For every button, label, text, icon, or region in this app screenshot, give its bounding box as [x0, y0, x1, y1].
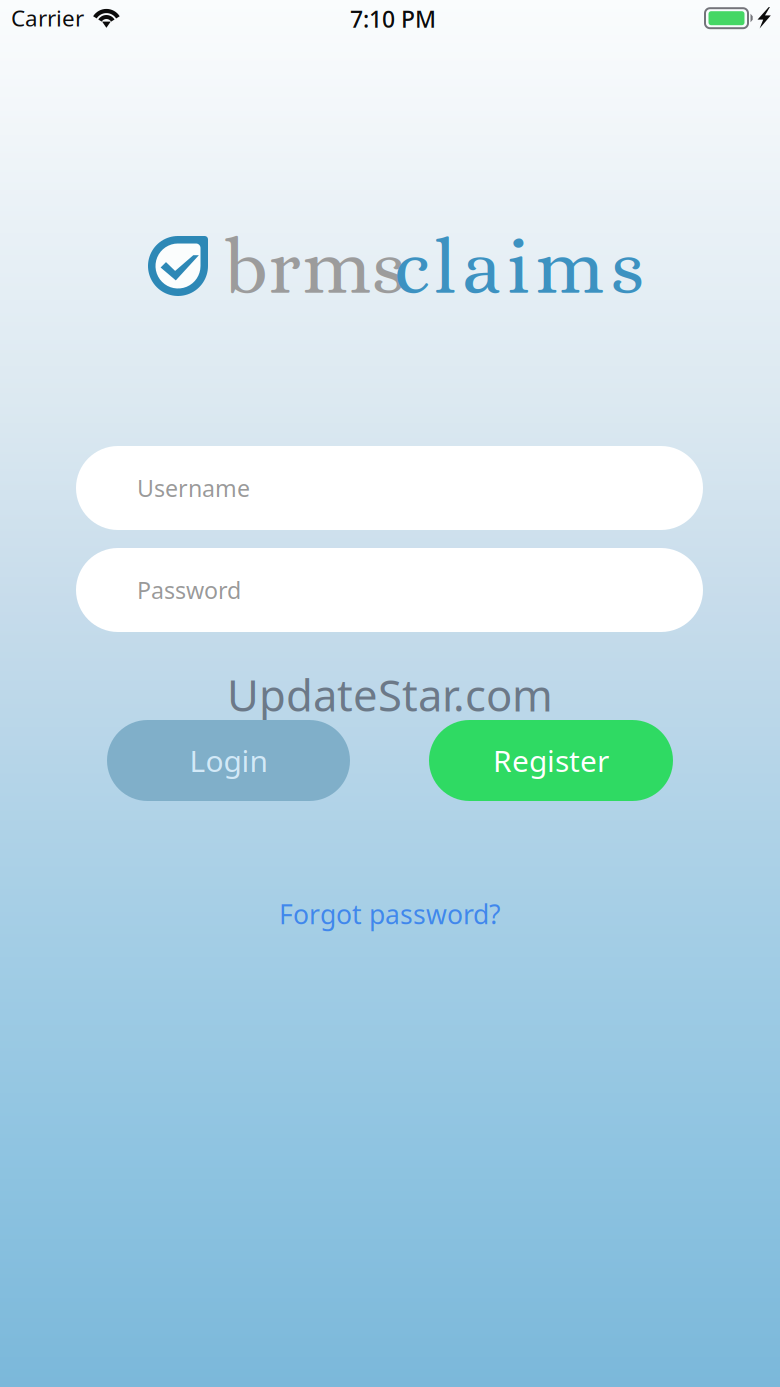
staticText: UpdateStar.com	[227, 665, 553, 724]
staticText: brms	[225, 223, 406, 311]
staticText: 7:10 PM	[350, 3, 436, 34]
button[interactable]: Login	[107, 720, 350, 801]
staticText: Username	[137, 472, 250, 504]
button[interactable]: Register	[429, 720, 673, 801]
staticText: Login	[189, 740, 267, 781]
staticText: Forgot password?	[279, 896, 501, 932]
staticText: Password	[137, 574, 241, 606]
staticText: Register	[493, 740, 609, 781]
staticText: Carrier	[11, 2, 84, 33]
button[interactable]: Forgot password?	[230, 890, 550, 938]
staticText: claims	[394, 223, 644, 311]
